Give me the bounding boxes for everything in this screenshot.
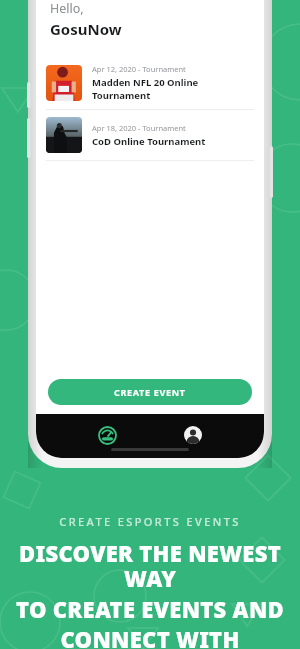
staticText: GosuNow bbox=[50, 19, 122, 39]
staticText: TO CREATE EVENTS AND bbox=[16, 594, 284, 624]
button[interactable]: Profile bbox=[178, 420, 208, 450]
staticText: DISCOVER THE NEWEST WAY bbox=[0, 538, 300, 594]
staticText: CoD Online Tournament bbox=[92, 135, 206, 148]
staticText: Madden NFL 20 Online Tournament bbox=[92, 76, 254, 102]
button[interactable]: Apr 18, 2020 - Tournament bbox=[36, 110, 264, 160]
staticText: CREATE EVENT bbox=[114, 386, 186, 398]
button[interactable]: CREATE EVENT bbox=[48, 379, 252, 405]
staticText: CREATE ESPORTS EVENTS bbox=[59, 514, 241, 529]
staticText: Apr 18, 2020 - Tournament bbox=[92, 123, 186, 133]
staticText: Apr 12, 2020 - Tournament bbox=[92, 64, 186, 74]
staticText: Hello, bbox=[50, 0, 84, 17]
button[interactable]: Apr 12, 2020 - Tournament bbox=[36, 57, 264, 109]
button[interactable]: Dashboard bbox=[92, 420, 122, 450]
staticText: CONNECT WITH CUSTOMERS bbox=[0, 624, 300, 649]
